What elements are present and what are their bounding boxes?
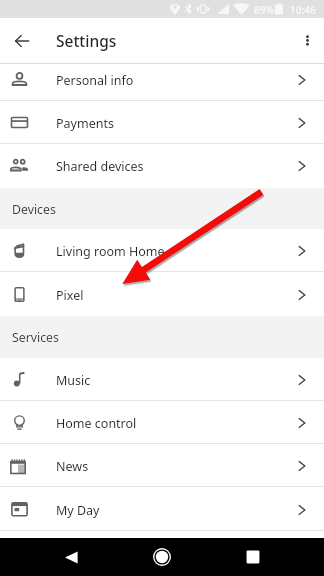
staticText: Services: [12, 329, 59, 346]
button[interactable]: Recent apps: [235, 539, 271, 575]
button[interactable]: Shared devices: [0, 144, 324, 187]
staticText: Living room Home: [56, 243, 165, 260]
button[interactable]: News: [0, 444, 324, 487]
staticText: News: [56, 458, 89, 475]
button[interactable]: Pixel: [0, 273, 324, 316]
button[interactable]: Living room Home: [0, 229, 324, 272]
button[interactable]: Payments: [0, 101, 324, 144]
staticText: Settings: [56, 30, 117, 51]
staticText: Shared devices: [56, 158, 144, 175]
staticText: Music: [56, 372, 91, 389]
button[interactable]: Back: [4, 23, 40, 59]
button[interactable]: More options: [289, 22, 324, 58]
staticText: 10:46: [290, 3, 316, 17]
button[interactable]: My Day: [0, 488, 324, 531]
staticText: Home control: [56, 415, 137, 432]
staticText: Devices: [12, 201, 56, 218]
staticText: Pixel: [56, 287, 84, 304]
button[interactable]: Back: [53, 539, 89, 575]
button[interactable]: Home: [144, 539, 180, 575]
staticText: 89%: [254, 3, 274, 17]
button[interactable]: Home control: [0, 401, 324, 444]
button[interactable]: Personal info: [0, 64, 324, 101]
staticText: Personal info: [56, 72, 134, 89]
staticText: My Day: [56, 502, 100, 519]
staticText: Payments: [56, 115, 114, 132]
button[interactable]: Music: [0, 358, 324, 401]
